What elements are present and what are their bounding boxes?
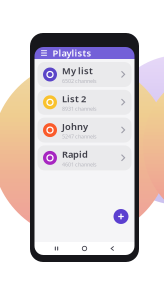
staticText: Playlists xyxy=(52,47,91,59)
staticText: Johny xyxy=(62,120,88,132)
staticText: Rapid xyxy=(62,148,88,160)
staticText: 6502 channels xyxy=(62,77,97,84)
button[interactable]: Home xyxy=(78,242,90,254)
staticText: 4601 channels xyxy=(62,161,97,168)
staticText: 5247 channels xyxy=(62,133,97,140)
button[interactable]: Add playlist xyxy=(113,209,128,224)
button[interactable]: Rapid xyxy=(37,145,131,170)
button[interactable]: List 2 xyxy=(37,90,131,115)
staticText: List 2 xyxy=(62,92,86,105)
button[interactable]: Back xyxy=(106,242,118,254)
button[interactable]: Johny xyxy=(37,118,131,143)
staticText: 8931 channels xyxy=(62,105,97,112)
button[interactable]: Recents xyxy=(50,242,62,254)
button[interactable]: My list xyxy=(37,62,131,87)
staticText: My list xyxy=(62,64,93,77)
button[interactable]: Menu xyxy=(39,47,48,59)
